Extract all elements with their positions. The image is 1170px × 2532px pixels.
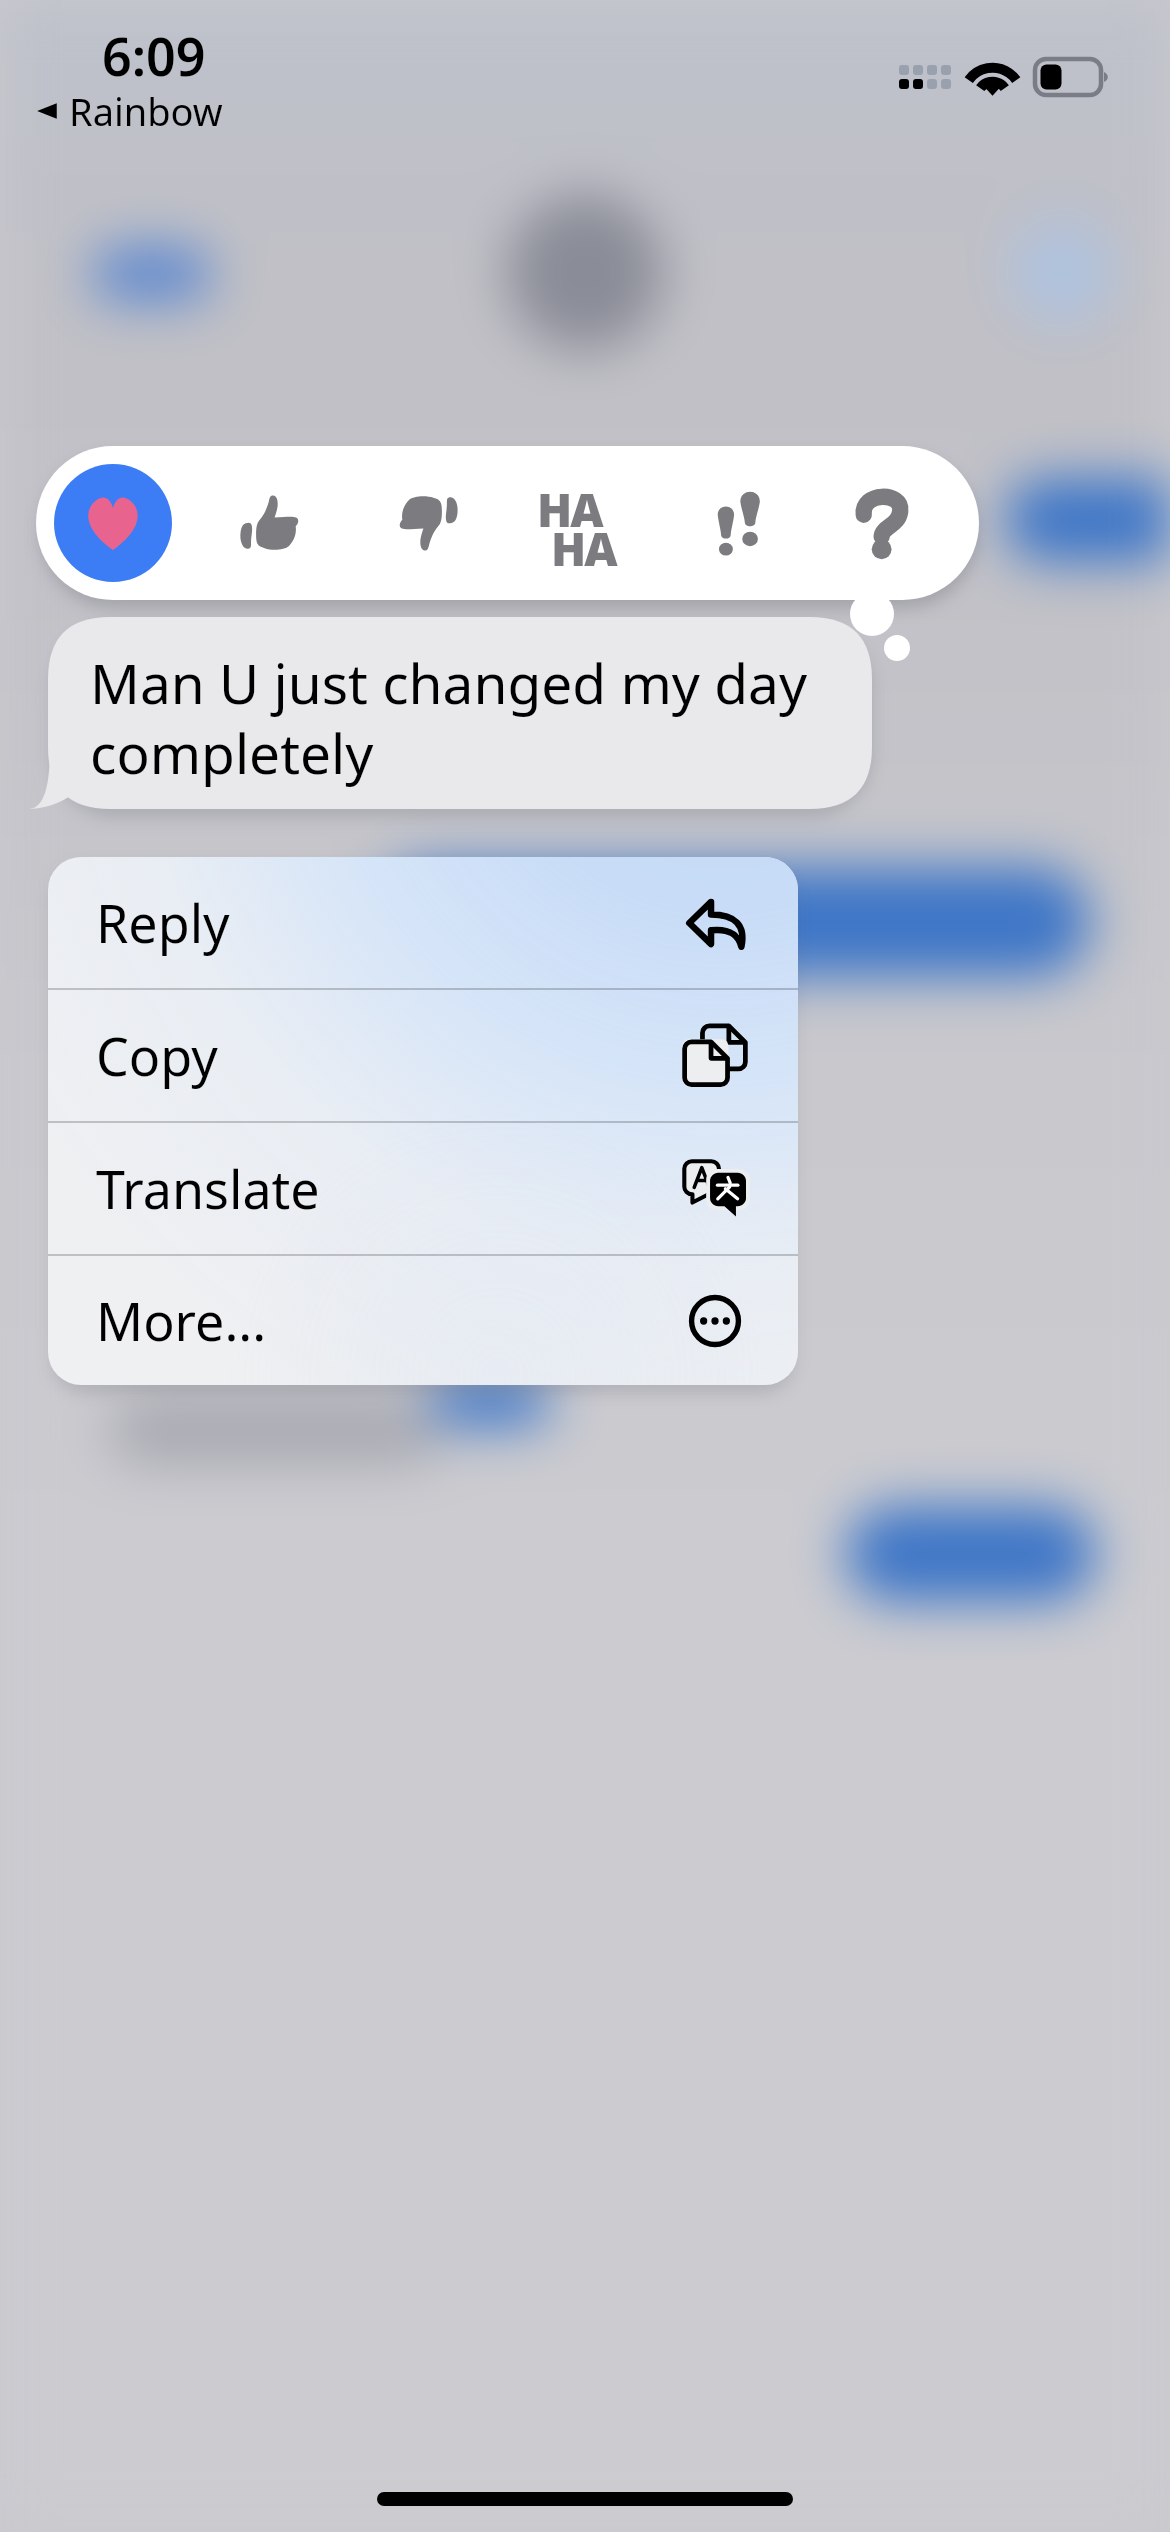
- staticText: Translate: [96, 1153, 320, 1224]
- staticText: Reply: [96, 887, 230, 958]
- button[interactable]: Rainbow: [31, 85, 223, 137]
- button[interactable]: More...: [48, 1256, 798, 1385]
- button[interactable]: Love reaction: [54, 464, 172, 582]
- staticText: Rainbow: [69, 85, 223, 137]
- button[interactable]: Exclamation reaction: [678, 463, 798, 583]
- button[interactable]: Copy: [48, 990, 798, 1121]
- staticText: 6:09: [102, 20, 206, 91]
- button[interactable]: Question reaction: [822, 463, 942, 583]
- staticText: More...: [96, 1285, 267, 1356]
- button[interactable]: Reply: [48, 857, 798, 988]
- button[interactable]: Haha reaction: [520, 458, 650, 588]
- staticText: Copy: [96, 1020, 218, 1091]
- button[interactable]: Thumbs down reaction: [366, 463, 486, 583]
- staticText: HA: [537, 478, 602, 541]
- staticText: HA: [551, 517, 616, 580]
- button[interactable]: Translate: [48, 1123, 798, 1254]
- button[interactable]: Thumbs up reaction: [212, 463, 332, 583]
- staticText: Man U just changed my day completely: [90, 645, 850, 790]
